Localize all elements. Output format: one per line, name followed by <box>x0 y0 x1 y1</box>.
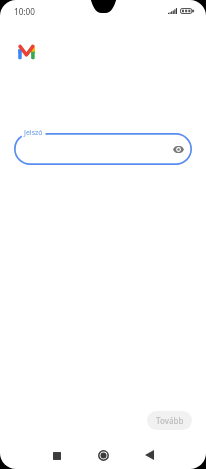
staticText: Jelszó <box>24 128 43 138</box>
button[interactable]: Jelszó megjelenítése <box>168 139 189 160</box>
button[interactable]: Legutóbbi alkalmazások <box>42 441 72 469</box>
staticText: Tovább <box>156 415 184 426</box>
staticText: 10:00 <box>14 6 35 17</box>
button[interactable]: Tovább <box>147 411 192 430</box>
button[interactable]: Jelszó megjelenítése <box>14 133 192 165</box>
button[interactable]: Vissza <box>134 440 164 469</box>
button[interactable]: Kezdőlap <box>88 440 118 469</box>
